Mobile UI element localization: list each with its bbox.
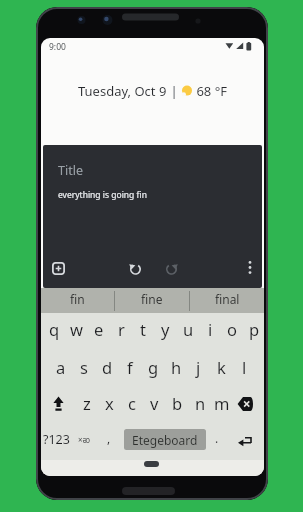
button[interactable]: s: [72, 354, 96, 380]
button[interactable]: [52, 262, 65, 275]
button[interactable]: y: [153, 316, 177, 342]
button[interactable]: k: [209, 354, 233, 380]
staticText: 68 °F: [193, 82, 227, 99]
button[interactable]: m: [210, 390, 234, 416]
button[interactable]: u: [176, 316, 200, 342]
staticText: z: [83, 392, 91, 414]
staticText: Tuesday, Oct 9: [78, 82, 167, 99]
staticText: t: [140, 318, 146, 340]
button[interactable]: [165, 262, 178, 275]
button[interactable]: [129, 262, 142, 275]
button[interactable]: Tuesday, Oct 9: [41, 82, 264, 99]
staticText: v: [150, 392, 159, 414]
button[interactable]: [144, 461, 159, 467]
button[interactable]: i: [198, 316, 222, 342]
button[interactable]: q: [42, 316, 66, 342]
staticText: e: [94, 318, 104, 340]
staticText: d: [102, 356, 113, 378]
button[interactable]: z: [75, 390, 99, 416]
staticText: g: [148, 356, 159, 378]
staticText: f: [127, 356, 133, 378]
staticText: |: [167, 82, 181, 99]
button[interactable]: [237, 396, 254, 412]
button[interactable]: f: [118, 354, 142, 380]
button[interactable]: .: [205, 425, 229, 451]
button[interactable]: a: [49, 354, 73, 380]
button[interactable]: ×ᴔ: [72, 426, 96, 452]
button[interactable]: b: [165, 390, 189, 416]
staticText: o: [227, 318, 237, 340]
button[interactable]: fin: [41, 288, 114, 310]
staticText: Etegeboard: [132, 432, 198, 448]
staticText: b: [172, 392, 183, 414]
button[interactable]: ,: [97, 425, 121, 451]
staticText: r: [118, 318, 125, 340]
button[interactable]: [50, 395, 67, 412]
button[interactable]: t: [131, 316, 155, 342]
staticText: Title: [58, 162, 83, 179]
staticText: final: [215, 291, 240, 307]
staticText: ×ᴔ: [78, 434, 91, 445]
staticText: 9:00: [49, 41, 66, 53]
staticText: h: [171, 356, 182, 378]
staticText: m: [214, 392, 230, 414]
staticText: p: [249, 318, 260, 340]
button[interactable]: v: [142, 390, 166, 416]
button[interactable]: [244, 260, 256, 275]
button[interactable]: x: [97, 390, 121, 416]
button[interactable]: j: [186, 354, 210, 380]
staticText: y: [161, 318, 170, 340]
button[interactable]: c: [120, 390, 144, 416]
staticText: i: [208, 318, 213, 340]
button[interactable]: r: [109, 316, 133, 342]
staticText: a: [56, 356, 66, 378]
button[interactable]: g: [141, 354, 165, 380]
button[interactable]: w: [64, 316, 88, 342]
staticText: j: [196, 356, 201, 378]
button[interactable]: d: [95, 354, 119, 380]
button[interactable]: l: [232, 354, 256, 380]
button[interactable]: ?123: [41, 430, 71, 448]
button[interactable]: p: [242, 316, 264, 342]
button[interactable]: n: [188, 390, 212, 416]
staticText: x: [105, 392, 114, 414]
staticText: .: [215, 430, 219, 446]
button[interactable]: Etegeboard: [124, 429, 206, 450]
button[interactable]: final: [190, 288, 264, 310]
staticText: fin: [70, 291, 85, 307]
staticText: n: [195, 392, 206, 414]
staticText: l: [242, 356, 247, 378]
staticText: ,: [107, 430, 111, 446]
staticText: fine: [141, 291, 163, 307]
button[interactable]: h: [164, 354, 188, 380]
staticText: u: [183, 318, 194, 340]
button[interactable]: e: [87, 316, 111, 342]
staticText: k: [217, 356, 226, 378]
staticText: ?123: [43, 431, 70, 448]
staticText: c: [128, 392, 136, 414]
staticText: s: [80, 356, 88, 378]
staticText: everything is going fin: [58, 189, 147, 201]
button[interactable]: o: [220, 316, 244, 342]
button[interactable]: [237, 433, 254, 449]
button[interactable]: fine: [115, 288, 189, 310]
staticText: w: [70, 318, 83, 340]
staticText: q: [49, 318, 60, 340]
